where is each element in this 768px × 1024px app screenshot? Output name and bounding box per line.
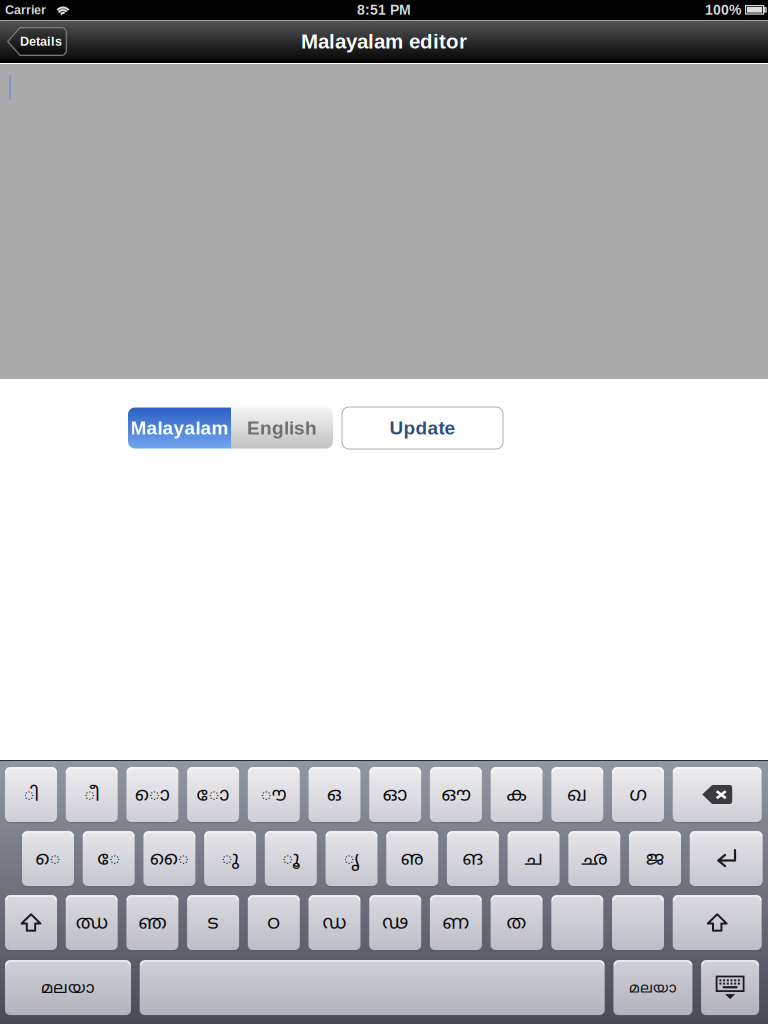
button[interactable]: ഡ [308, 895, 360, 950]
staticText: Update [389, 417, 455, 439]
button[interactable]: Details [7, 27, 67, 56]
button[interactable]: ോ [187, 767, 239, 822]
button[interactable]: ജ [629, 831, 681, 886]
button[interactable]: ൈ [143, 831, 195, 886]
button[interactable]: ങ [447, 831, 499, 886]
button[interactable]: േ [83, 831, 135, 886]
button[interactable]: Shift [673, 895, 762, 950]
button[interactable]: മലയാ [613, 960, 692, 1015]
staticText: ീ [84, 784, 99, 808]
staticText: ണ [442, 912, 469, 936]
button[interactable]: ൗ [248, 767, 300, 822]
button[interactable]: ച [508, 831, 560, 886]
staticText: ക [507, 784, 527, 808]
staticText: ഠ [267, 912, 280, 936]
button[interactable]: Shift [5, 895, 57, 950]
staticText: ച [525, 848, 543, 872]
staticText: ൃ [343, 848, 359, 872]
staticText: ൂ [282, 848, 299, 872]
staticText: ഖ [567, 784, 587, 808]
staticText: ഡ [322, 912, 346, 936]
button[interactable]: ഒ [308, 767, 360, 822]
staticText: ു [222, 848, 239, 872]
staticText: ഒ [327, 784, 342, 808]
button[interactable]: ട [187, 895, 239, 950]
button[interactable]: Space [140, 960, 605, 1015]
button[interactable]: ൃ [325, 831, 377, 886]
button[interactable]: െ [22, 831, 74, 886]
staticText: മലയാ [41, 978, 95, 1000]
button[interactable]: Update [342, 407, 503, 449]
button[interactable]: ീ [66, 767, 118, 822]
staticText: English [247, 417, 317, 439]
button[interactable]: English [231, 407, 333, 448]
staticText: ഞ [138, 912, 166, 936]
staticText: ി [23, 784, 38, 808]
staticText: Details [20, 34, 62, 49]
button[interactable]: ൂ [265, 831, 317, 886]
button[interactable]: ഖ [551, 767, 603, 822]
staticText: ങ [462, 848, 483, 872]
staticText: 8:51 PM [357, 2, 411, 18]
staticText: െ [35, 848, 60, 872]
button[interactable]: മലയാ [5, 960, 131, 1015]
button[interactable]: ഔ [430, 767, 482, 822]
staticText: ഛ [581, 848, 607, 872]
staticText: 100% [705, 2, 741, 18]
button[interactable]: ഗ [612, 767, 664, 822]
button[interactable]: ു [204, 831, 256, 886]
staticText: ഢ [382, 912, 408, 936]
button[interactable]: ത [491, 895, 543, 950]
button[interactable]: ഞ [126, 895, 178, 950]
staticText: ത [507, 912, 527, 936]
staticText: േ [97, 848, 120, 872]
button[interactable]: Blank key [612, 895, 664, 950]
button[interactable]: Hide keyboard [701, 960, 759, 1015]
button[interactable]: ഌ [386, 831, 438, 886]
button[interactable]: ി [5, 767, 57, 822]
button[interactable]: Delete [673, 767, 762, 822]
staticText: Carrier [5, 3, 46, 17]
staticText: ട [208, 912, 219, 936]
staticText: ോ [197, 784, 230, 808]
button[interactable]: ഝ [66, 895, 118, 950]
staticText: ഓ [383, 784, 408, 808]
staticText: ഝ [76, 912, 108, 936]
staticText: ഗ [629, 784, 646, 808]
staticText: ൈ [150, 848, 189, 872]
button[interactable]: Malayalam [128, 407, 231, 448]
staticText: ഌ [401, 848, 424, 872]
button[interactable]: ൊ [126, 767, 178, 822]
staticText: ൗ [261, 784, 287, 808]
staticText: ഔ [441, 784, 470, 808]
staticText: മലയാ [629, 980, 677, 998]
staticText: Malayalam editor [301, 30, 467, 53]
button[interactable]: ഢ [369, 895, 421, 950]
staticText: ൊ [135, 784, 170, 808]
button[interactable]: ഓ [369, 767, 421, 822]
button[interactable]: ക [491, 767, 543, 822]
button[interactable]: Return [690, 831, 763, 886]
staticText: Malayalam [130, 417, 228, 439]
button[interactable]: ഠ [248, 895, 300, 950]
button[interactable]: ഛ [568, 831, 620, 886]
button[interactable]: Blank key [551, 895, 603, 950]
button[interactable]: ണ [430, 895, 482, 950]
staticText: ജ [646, 848, 664, 872]
